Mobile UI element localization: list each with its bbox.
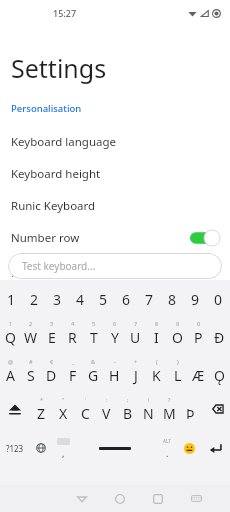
button[interactable]: 8: [161, 284, 184, 314]
button[interactable]: Home: [101, 485, 139, 512]
button[interactable]: Hide keyboard: [62, 485, 101, 512]
staticText: +: [134, 358, 138, 365]
button[interactable]: ,: [52, 428, 75, 468]
button[interactable]: Keyboard height: [0, 158, 230, 190]
button[interactable]: ): [167, 352, 188, 390]
button[interactable]: Æ: [188, 352, 209, 390]
staticText: O: [172, 328, 183, 347]
staticText: F: [69, 366, 77, 385]
staticText: -: [114, 358, 116, 365]
staticText: Test keyboard...: [22, 259, 96, 273]
button[interactable]: Test keyboard...: [8, 253, 222, 279]
button[interactable]: #: [20, 352, 41, 390]
button[interactable]: 0: [188, 314, 209, 352]
button[interactable]: &: [83, 352, 104, 390]
button[interactable]: 1: [0, 314, 20, 352]
button[interactable]: 4: [62, 314, 83, 352]
button[interactable]: 5: [92, 284, 115, 314]
button[interactable]: ": [52, 390, 74, 428]
staticText: Æ: [192, 366, 205, 385]
button[interactable]: +: [125, 352, 146, 390]
button[interactable]: Switch keyboard: [177, 485, 215, 512]
button[interactable]: Emoji: [178, 428, 201, 468]
staticText: ,: [62, 447, 65, 459]
staticText: Keyboard height: [11, 166, 101, 182]
staticText: Runic Keyboard: [11, 198, 96, 214]
button[interactable]: (: [146, 352, 167, 390]
button[interactable]: Backspace: [201, 390, 230, 428]
staticText: .: [166, 447, 169, 459]
button[interactable]: 6: [104, 314, 125, 352]
staticText: V: [102, 404, 111, 423]
button[interactable]: @: [0, 352, 20, 390]
button[interactable]: Þ: [180, 390, 201, 428]
button[interactable]: 3: [46, 284, 69, 314]
staticText: 3: [53, 290, 62, 309]
button[interactable]: 8: [146, 314, 167, 352]
button[interactable]: ALT: [155, 428, 178, 468]
button[interactable]: Keyboard language: [0, 126, 230, 158]
staticText: 7: [145, 290, 154, 309]
staticText: 6: [122, 290, 131, 309]
button[interactable]: 5: [83, 314, 104, 352]
staticText: :: [106, 396, 108, 403]
button[interactable]: ': [74, 390, 96, 428]
staticText: Settings: [11, 51, 107, 85]
staticText: *: [40, 396, 44, 403]
button[interactable]: 9: [184, 284, 207, 314]
staticText: L: [174, 366, 182, 385]
button[interactable]: 7: [125, 314, 146, 352]
button[interactable]: 4: [69, 284, 92, 314]
staticText: ": [62, 396, 65, 403]
button[interactable]: Change keyboard: [29, 428, 52, 468]
staticText: 9: [176, 320, 180, 327]
staticText: _: [72, 358, 75, 365]
staticText: ?: [168, 396, 171, 403]
button[interactable]: 3: [41, 314, 62, 352]
staticText: W: [24, 328, 38, 347]
staticText: Ǫ: [214, 366, 225, 385]
button[interactable]: Ǫ: [209, 352, 230, 390]
button[interactable]: 6: [115, 284, 138, 314]
staticText: T: [90, 328, 98, 347]
staticText: K: [152, 366, 161, 385]
staticText: G: [88, 366, 99, 385]
button[interactable]: ;: [117, 390, 138, 428]
staticText: ALT: [163, 438, 171, 444]
button[interactable]: Runic Keyboard: [0, 190, 230, 222]
button[interactable]: Enter: [201, 428, 230, 468]
button[interactable]: 0: [207, 284, 230, 314]
button[interactable]: ?123: [0, 428, 29, 468]
staticText: (: [156, 358, 158, 365]
staticText: 1: [7, 290, 16, 309]
button[interactable]: Recents: [139, 485, 177, 512]
staticText: Keyboard language: [11, 134, 117, 150]
button[interactable]: 1: [0, 284, 23, 314]
staticText: U: [130, 328, 141, 347]
staticText: @: [8, 358, 13, 365]
staticText: 3: [50, 320, 54, 327]
staticText: S: [27, 366, 35, 385]
staticText: !: [148, 396, 150, 403]
button[interactable]: 2: [20, 314, 41, 352]
staticText: 2: [29, 320, 33, 327]
button[interactable]: ?: [159, 390, 180, 428]
button[interactable]: Ð: [209, 314, 230, 352]
button[interactable]: -: [104, 352, 125, 390]
button[interactable]: Shift: [0, 390, 30, 428]
button[interactable]: €: [41, 352, 62, 390]
button[interactable]: Number row: [0, 222, 230, 254]
button[interactable]: *: [30, 390, 52, 428]
button[interactable]: !: [138, 390, 159, 428]
button[interactable]: 9: [167, 314, 188, 352]
staticText: E: [48, 328, 56, 347]
staticText: 4: [76, 290, 85, 309]
button[interactable]: Space: [75, 428, 155, 468]
button[interactable]: 7: [138, 284, 161, 314]
button[interactable]: _: [62, 352, 83, 390]
staticText: M: [163, 404, 176, 423]
button[interactable]: :: [96, 390, 117, 428]
staticText: 15:27: [53, 7, 77, 19]
staticText: H: [109, 366, 120, 385]
button[interactable]: 2: [23, 284, 46, 314]
